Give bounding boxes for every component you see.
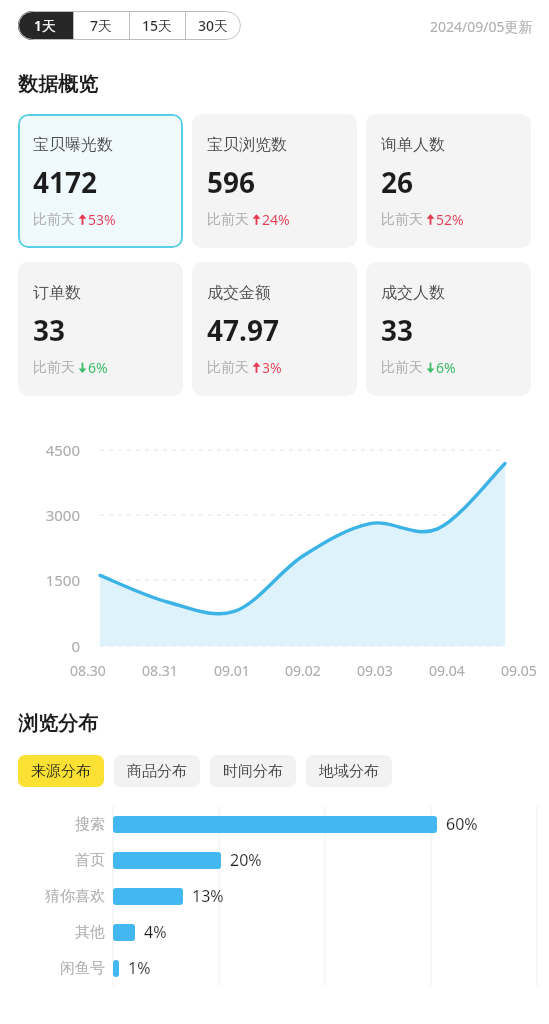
- button[interactable]: 猜你喜欢: [0, 878, 549, 914]
- staticText: 09.01: [214, 661, 250, 680]
- staticText: 商品分布: [127, 762, 187, 781]
- staticText: 4500: [0, 440, 80, 460]
- staticText: 比前天: [381, 211, 423, 229]
- staticText: 09.04: [429, 661, 465, 680]
- staticText: 596: [207, 163, 256, 201]
- staticText: 成交金额: [207, 283, 271, 303]
- button[interactable]: 1天: [18, 11, 73, 40]
- button[interactable]: 宝贝浏览数: [192, 114, 357, 248]
- button[interactable]: 其他: [0, 914, 549, 950]
- staticText: 搜索: [0, 815, 105, 834]
- other: Increase: [77, 213, 88, 226]
- staticText: 1天: [34, 16, 57, 35]
- staticText: 1%: [128, 957, 151, 979]
- other: Increase: [425, 213, 436, 226]
- staticText: 53%: [88, 210, 116, 229]
- staticText: 猜你喜欢: [0, 887, 105, 906]
- staticText: 地域分布: [319, 762, 379, 781]
- staticText: 来源分布: [31, 762, 91, 781]
- staticText: 询单人数: [381, 135, 445, 155]
- staticText: 1500: [0, 570, 80, 590]
- button[interactable]: 时间分布: [210, 755, 296, 787]
- staticText: 08.30: [70, 661, 106, 680]
- button[interactable]: 成交金额: [192, 262, 357, 396]
- staticText: 比前天: [33, 359, 75, 377]
- staticText: 33: [381, 311, 414, 349]
- staticText: 20%: [230, 849, 262, 871]
- other: Increase: [251, 213, 262, 226]
- staticText: 宝贝浏览数: [207, 135, 287, 155]
- staticText: 47.97: [207, 311, 279, 349]
- staticText: 订单数: [33, 283, 81, 303]
- staticText: 4172: [33, 163, 98, 201]
- staticText: 08.31: [142, 661, 178, 680]
- staticText: 3%: [262, 358, 282, 377]
- staticText: 09.05: [501, 661, 537, 680]
- staticText: 60%: [446, 813, 478, 835]
- staticText: 比前天: [33, 211, 75, 229]
- staticText: 0: [0, 636, 80, 656]
- staticText: 比前天: [381, 359, 423, 377]
- staticText: 33: [33, 311, 66, 349]
- staticText: 15天: [142, 16, 173, 35]
- staticText: 首页: [0, 851, 105, 870]
- staticText: 宝贝曝光数: [33, 135, 113, 155]
- staticText: 闲鱼号: [0, 959, 105, 978]
- staticText: 6%: [88, 358, 108, 377]
- button[interactable]: 15天: [130, 11, 185, 40]
- button[interactable]: 商品分布: [114, 755, 200, 787]
- button[interactable]: 宝贝曝光数: [18, 114, 183, 248]
- staticText: 浏览分布: [18, 711, 98, 736]
- staticText: 时间分布: [223, 762, 283, 781]
- staticText: 比前天: [207, 211, 249, 229]
- staticText: 3000: [0, 505, 80, 525]
- staticText: 13%: [192, 885, 224, 907]
- button[interactable]: 询单人数: [366, 114, 531, 248]
- staticText: 其他: [0, 923, 105, 942]
- button[interactable]: 首页: [0, 842, 549, 878]
- staticText: 24%: [262, 210, 290, 229]
- staticText: 数据概览: [18, 72, 98, 97]
- staticText: 2024/09/05更新: [430, 17, 533, 36]
- button[interactable]: 来源分布: [18, 755, 104, 787]
- staticText: 26: [381, 163, 414, 201]
- staticText: 7天: [90, 16, 113, 35]
- button[interactable]: 闲鱼号: [0, 950, 549, 986]
- staticText: 09.03: [357, 661, 393, 680]
- staticText: 6%: [436, 358, 456, 377]
- staticText: 52%: [436, 210, 464, 229]
- staticText: 比前天: [207, 359, 249, 377]
- other: Increase: [251, 361, 262, 374]
- button[interactable]: 搜索: [0, 806, 549, 842]
- other: Decrease: [425, 361, 436, 374]
- staticText: 09.02: [285, 661, 321, 680]
- staticText: 30天: [198, 16, 229, 35]
- other: Decrease: [77, 361, 88, 374]
- button[interactable]: 成交人数: [366, 262, 531, 396]
- button[interactable]: 地域分布: [306, 755, 392, 787]
- staticText: 4%: [144, 921, 167, 943]
- button[interactable]: 订单数: [18, 262, 183, 396]
- button[interactable]: 7天: [74, 11, 129, 40]
- button[interactable]: 30天: [186, 11, 241, 40]
- staticText: 成交人数: [381, 283, 445, 303]
